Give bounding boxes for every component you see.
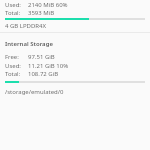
- staticText: Total:: [5, 9, 21, 17]
- staticText: /storage/emulated/0: [5, 88, 64, 96]
- staticText: 4 GB LPDDR4X: [5, 22, 47, 30]
- staticText: 108.72 GiB: [28, 70, 59, 78]
- staticText: Used:: [5, 1, 21, 9]
- button[interactable]: /storage/emulated/0: [0, 87, 59, 95]
- staticText: Free:: [5, 53, 19, 61]
- staticText: 11.21 GiB 10%: [28, 62, 69, 70]
- staticText: 3593 MiB: [28, 9, 55, 17]
- staticText: 2140 MiB 60%: [28, 1, 68, 9]
- staticText: Used:: [5, 62, 21, 70]
- staticText: Total:: [5, 70, 21, 78]
- staticText: Internal Storage: [5, 40, 53, 48]
- staticText: 97.51 GiB: [28, 53, 55, 61]
